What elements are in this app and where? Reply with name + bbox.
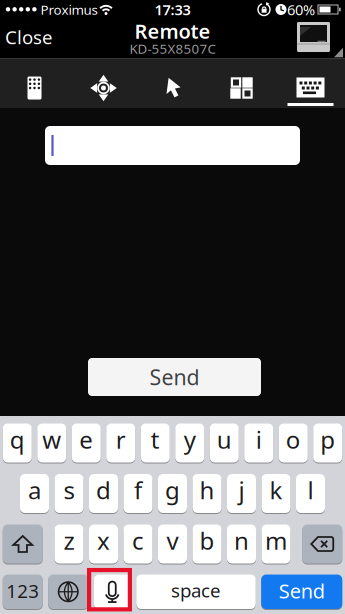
- button[interactable]: v: [158, 524, 187, 564]
- button[interactable]: Next keyboard: [48, 574, 88, 609]
- button[interactable]: b: [192, 524, 221, 564]
- staticText: e: [79, 424, 93, 455]
- button[interactable]: Apps: [224, 71, 258, 105]
- staticText: w: [42, 424, 61, 455]
- button[interactable]: q: [3, 423, 32, 463]
- staticText: p: [320, 424, 335, 455]
- button[interactable]: Numbers: [3, 574, 43, 609]
- button[interactable]: c: [123, 524, 152, 564]
- staticText: space: [171, 578, 221, 603]
- staticText: d: [96, 474, 111, 506]
- button[interactable]: g: [158, 473, 187, 513]
- staticText: Send: [149, 363, 199, 391]
- button[interactable]: w: [37, 423, 66, 463]
- button[interactable]: s: [54, 473, 83, 513]
- button[interactable]: h: [192, 473, 221, 513]
- staticText: Remote: [134, 18, 210, 44]
- staticText: s: [63, 474, 74, 506]
- button[interactable]: r: [106, 423, 135, 463]
- staticText: g: [165, 474, 180, 506]
- button[interactable]: Delete: [302, 524, 342, 564]
- staticText: j: [238, 474, 244, 506]
- button[interactable]: o: [279, 423, 308, 463]
- button[interactable]: p: [313, 423, 342, 463]
- staticText: k: [269, 474, 282, 506]
- staticText: a: [28, 474, 41, 506]
- staticText: b: [199, 525, 214, 556]
- staticText: 17:33: [154, 0, 190, 19]
- staticText: Proximus: [40, 1, 97, 18]
- button[interactable]: d: [89, 473, 118, 513]
- button[interactable]: Send: [88, 358, 261, 396]
- staticText: 123: [6, 578, 39, 603]
- button[interactable]: Pointer: [155, 71, 189, 105]
- button[interactable]: Send: [261, 574, 342, 609]
- staticText: h: [199, 474, 214, 506]
- staticText: Close: [5, 25, 53, 49]
- staticText: c: [132, 525, 144, 556]
- staticText: f: [134, 474, 142, 506]
- staticText: t: [151, 424, 160, 455]
- staticText: l: [307, 474, 313, 506]
- staticText: v: [166, 525, 178, 556]
- button[interactable]: k: [261, 473, 290, 513]
- staticText: u: [217, 424, 232, 455]
- staticText: n: [234, 525, 249, 556]
- button[interactable]: f: [123, 473, 152, 513]
- staticText: m: [265, 525, 287, 556]
- button[interactable]: Shift: [3, 524, 43, 564]
- staticText: 60%: [287, 0, 315, 19]
- button[interactable]: n: [227, 524, 256, 564]
- button[interactable]: Remote keypad: [17, 71, 51, 105]
- button[interactable]: x: [89, 524, 118, 564]
- button[interactable]: TV: [297, 22, 330, 52]
- button[interactable]: Keyboard: [293, 74, 327, 100]
- button[interactable]: m: [261, 524, 290, 564]
- button[interactable]: u: [210, 423, 239, 463]
- staticText: y: [184, 424, 196, 455]
- button[interactable]: Dictation: [94, 574, 131, 609]
- button[interactable]: y: [175, 423, 204, 463]
- button[interactable]: space: [136, 574, 256, 609]
- staticText: Send: [279, 577, 325, 604]
- button[interactable]: l: [296, 473, 325, 513]
- staticText: q: [10, 424, 25, 455]
- staticText: KD-55X8507C: [129, 40, 215, 57]
- button[interactable]: j: [227, 473, 256, 513]
- button[interactable]: Directional pad: [86, 71, 120, 105]
- staticText: o: [286, 424, 301, 455]
- button[interactable]: Close: [0, 19, 58, 55]
- button[interactable]: e: [72, 423, 101, 463]
- button[interactable]: a: [20, 473, 49, 513]
- staticText: r: [116, 424, 126, 455]
- staticText: z: [63, 525, 74, 556]
- staticText: x: [97, 525, 110, 556]
- button[interactable]: t: [141, 423, 170, 463]
- button[interactable]: i: [244, 423, 273, 463]
- staticText: i: [256, 424, 262, 455]
- button[interactable]: z: [54, 524, 83, 564]
